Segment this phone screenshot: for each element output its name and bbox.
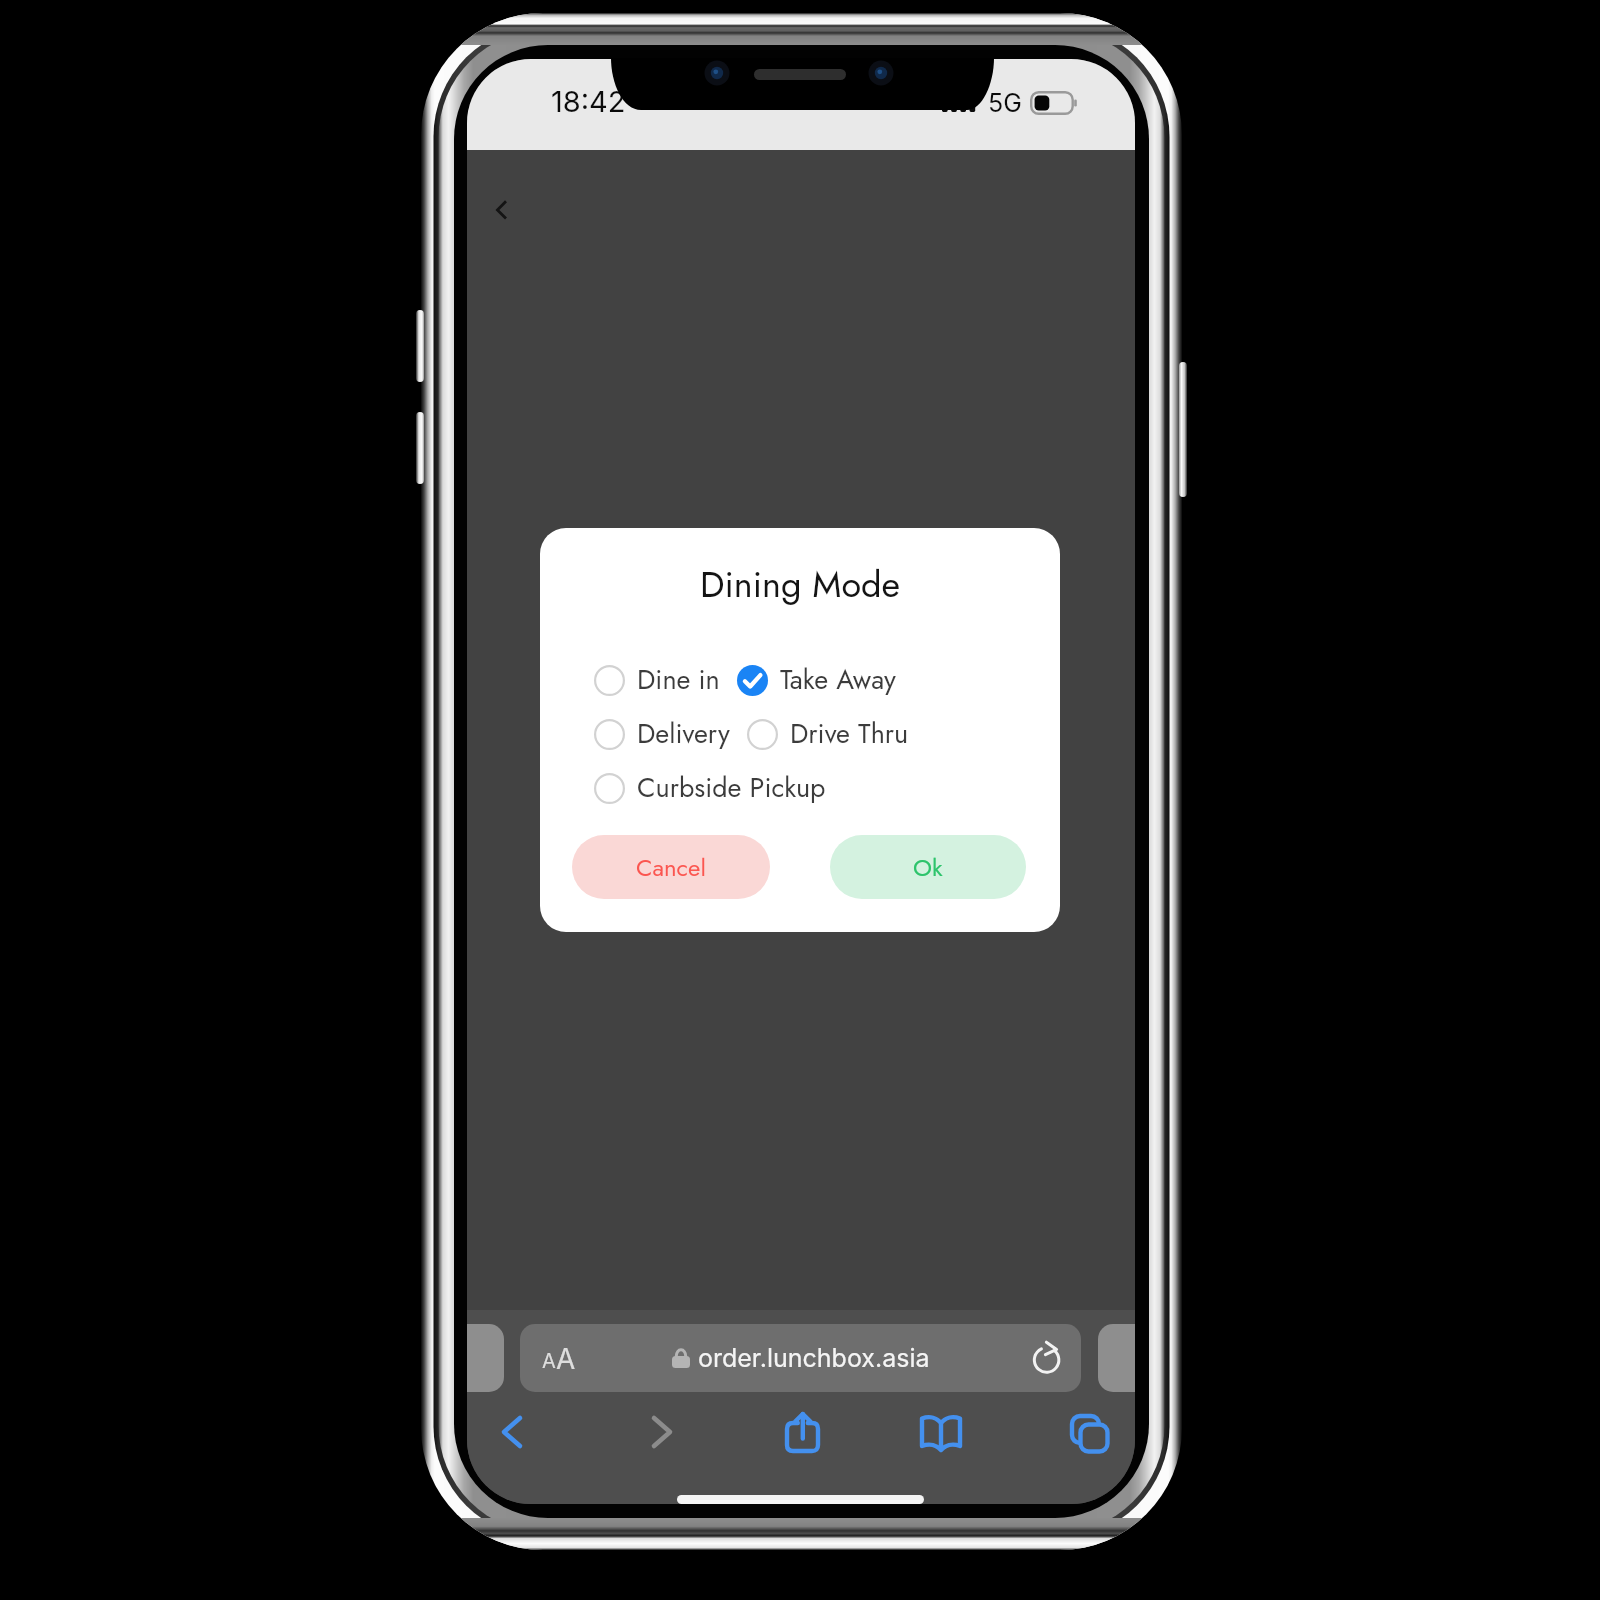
button[interactable]: Ok — [830, 835, 1026, 899]
staticText: Cancel — [636, 850, 706, 885]
staticText: Curbside Pickup — [637, 768, 826, 807]
button[interactable]: Back — [478, 1402, 538, 1462]
button[interactable]: Tabs — [1055, 1402, 1115, 1462]
button[interactable]: Forward — [626, 1402, 686, 1462]
button[interactable]: A — [520, 1324, 1081, 1392]
button[interactable]: Curbside Pickup — [594, 765, 814, 811]
staticText: Delivery — [637, 714, 730, 753]
button[interactable]: Cancel — [572, 835, 770, 899]
button[interactable]: Take Away — [737, 657, 884, 703]
staticText: Drive Thru — [790, 714, 909, 753]
staticText: A — [556, 1342, 576, 1376]
staticText: 18:42 — [551, 84, 626, 119]
staticText: Dine in — [637, 660, 720, 699]
button[interactable]: Bookmarks — [911, 1402, 971, 1462]
staticText: Dining Mode — [540, 558, 1060, 610]
button[interactable]: Delivery — [594, 711, 718, 757]
button[interactable]: Share — [767, 1402, 827, 1462]
button[interactable]: Back — [478, 176, 522, 220]
staticText: Take Away — [780, 660, 896, 699]
staticText: 5G — [988, 88, 1022, 118]
button[interactable]: Reload — [1028, 1342, 1066, 1380]
button[interactable]: Drive Thru — [747, 711, 897, 757]
staticText: A — [542, 1349, 556, 1373]
button[interactable]: Dine in — [594, 657, 708, 703]
staticText: order.lunchbox.asia — [698, 1343, 930, 1373]
staticText: Ok — [913, 850, 943, 885]
